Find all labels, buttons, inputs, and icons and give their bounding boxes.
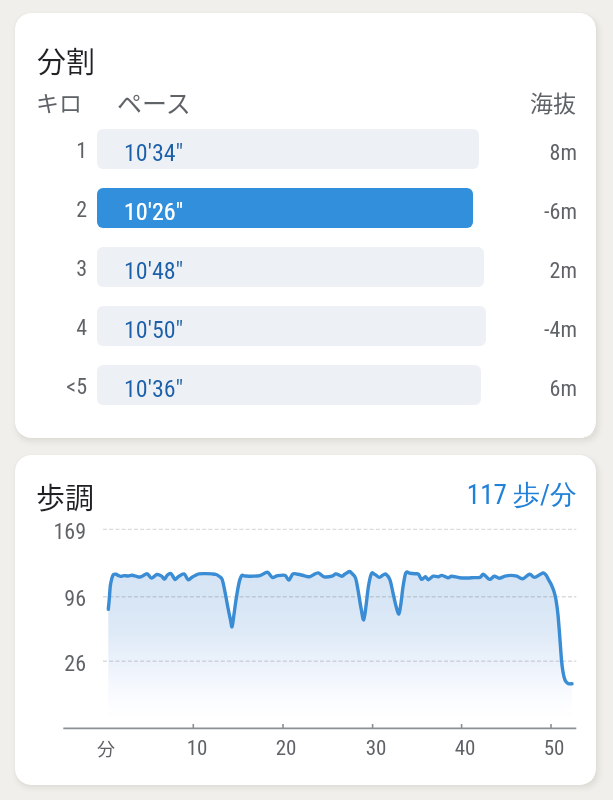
button[interactable]: <5 [15,365,596,405]
staticText: 20 [261,736,311,761]
button[interactable]: 3 [15,247,596,287]
staticText: 10'50" [124,316,184,344]
staticText: 10'34" [124,139,184,167]
staticText: 2 [15,197,87,223]
staticText: 50 [529,736,579,761]
staticText: 2m [497,258,577,284]
button[interactable]: 2 [15,188,596,228]
staticText: -4m [497,317,577,343]
staticText: 3 [15,256,87,282]
staticText: 海抜 [490,85,576,118]
button[interactable]: 4 [15,306,596,346]
staticText: 1 [15,138,87,164]
staticText: 10'36" [124,375,184,403]
staticText: 分 [81,735,131,761]
staticText: 分割 [37,39,96,81]
staticText: 6m [497,376,577,402]
staticText: 4 [15,315,87,341]
button[interactable]: 1 [15,129,596,169]
staticText: 30 [351,736,401,761]
staticText: -6m [497,199,577,225]
staticText: 8m [497,140,577,166]
staticText: 歩調 [36,475,95,517]
staticText: 10'26" [124,198,184,226]
staticText: 10'48" [124,257,184,285]
staticText: キロ [36,85,82,118]
staticText: 26 [21,651,86,677]
staticText: 117 歩/分 [415,478,577,512]
staticText: ペース [117,84,191,120]
staticText: 169 [21,519,86,545]
staticText: 96 [21,586,86,612]
staticText: 10 [172,736,222,761]
staticText: 40 [440,736,490,761]
staticText: <5 [15,374,87,400]
